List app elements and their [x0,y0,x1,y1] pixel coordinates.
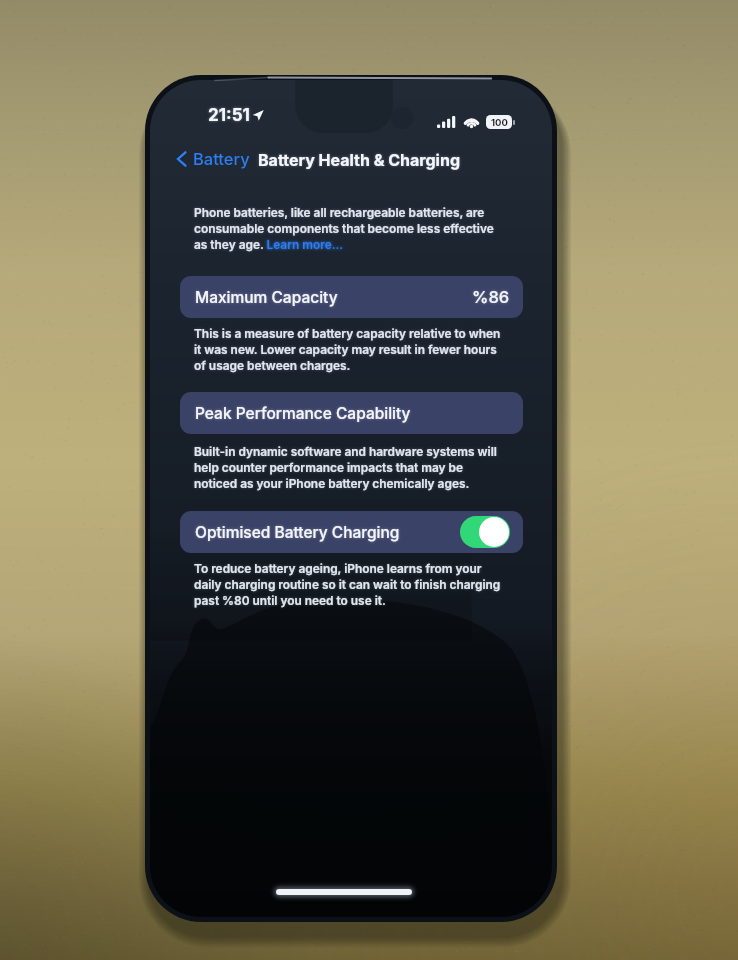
staticText: To reduce battery ageing, iPhone learns … [194,561,501,608]
staticText: Maximum Capacity [195,288,338,307]
staticText: Phone batteries, like all rechargeable b… [194,205,494,252]
button[interactable]: Learn more... [267,238,338,252]
staticText: Optimised Battery Charging [195,523,400,542]
staticText: Peak Performance Capability [195,404,411,423]
staticText: Battery Health & Charging [258,150,461,169]
staticText: Battery Health & Charging [258,150,461,169]
staticText: Peak Performance Capability [195,404,411,423]
staticText: This is a measure of battery capacity re… [194,326,501,373]
staticText: Built-in dynamic software and hardware s… [194,444,497,491]
button[interactable]: Back to Battery [176,149,250,169]
button[interactable]: Peak Performance Capability [180,392,523,434]
staticText: This is a measure of battery capacity re… [194,326,501,373]
staticText: Battery [193,149,250,169]
staticText: 21:51 [208,105,250,126]
staticText: %86 [472,287,510,307]
staticText: Phone batteries, like all rechargeable b… [194,205,494,252]
button[interactable]: Maximum Capacity [180,276,523,318]
staticText: To reduce battery ageing, iPhone learns … [194,561,501,608]
button[interactable]: Optimised Battery Charging toggle [460,516,510,548]
staticText: %86 [472,287,510,307]
staticText: 21:51 [208,105,250,126]
button[interactable]: Optimised Battery Charging [180,511,523,553]
staticText: 100 [491,117,508,128]
staticText: Optimised Battery Charging [195,523,400,542]
staticText: Maximum Capacity [195,288,338,307]
staticText: Built-in dynamic software and hardware s… [194,444,497,491]
